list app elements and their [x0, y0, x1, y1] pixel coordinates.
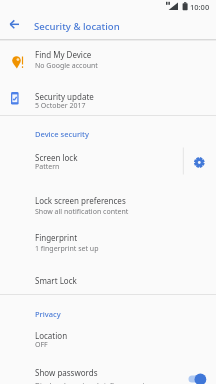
staticText: Security update: [35, 91, 94, 102]
button[interactable]: Security update: [0, 79, 216, 115]
button[interactable]: Lock screen preferences: [0, 189, 216, 225]
staticText: No Google account: [35, 61, 98, 71]
button[interactable]: Screen lock: [0, 146, 216, 183]
staticText: 1 fingerprint set up: [35, 244, 99, 254]
staticText: Display characters briefly as you type: [35, 381, 157, 384]
staticText: OFF: [35, 340, 48, 350]
staticText: Find My Device: [35, 49, 92, 60]
button[interactable]: Find My Device: [0, 42, 216, 79]
staticText: Pattern: [35, 162, 60, 172]
staticText: 5 October 2017: [35, 101, 86, 111]
staticText: Show passwords: [35, 367, 98, 378]
button[interactable]: Location: [0, 324, 216, 356]
staticText: Privacy: [35, 309, 61, 319]
staticText: Security & location: [34, 20, 120, 33]
button[interactable]: Show passwords: [0, 360, 216, 384]
staticText: Screen lock: [35, 152, 78, 163]
staticText: Smart Lock: [35, 275, 77, 286]
staticText: Location: [35, 330, 68, 341]
staticText: Device security: [35, 129, 89, 139]
staticText: Lock screen preferences: [35, 195, 126, 206]
staticText: Show all notification content: [35, 207, 129, 217]
staticText: 10:00: [190, 2, 210, 12]
staticText: Fingerprint: [35, 232, 78, 243]
button[interactable]: Smart Lock: [0, 266, 216, 292]
button[interactable]: Fingerprint: [0, 228, 216, 262]
